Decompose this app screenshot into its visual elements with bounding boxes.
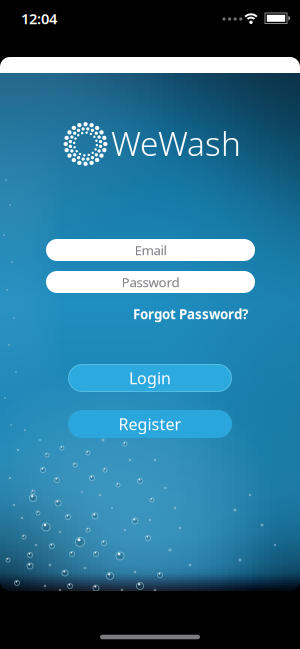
button[interactable]: Forgot Password? (53, 305, 248, 323)
button[interactable]: Password (46, 271, 255, 293)
staticText: Email (134, 241, 166, 259)
staticText: 12:04 (21, 9, 57, 28)
staticText: Login (129, 367, 171, 389)
staticText: Register (118, 413, 181, 435)
button[interactable]: Register (68, 410, 232, 438)
staticText: Password (121, 273, 179, 291)
staticText: Forgot Password? (133, 305, 248, 323)
button[interactable]: Login (68, 364, 232, 392)
staticText: WeWash (111, 121, 241, 165)
button[interactable]: Email (46, 239, 255, 261)
